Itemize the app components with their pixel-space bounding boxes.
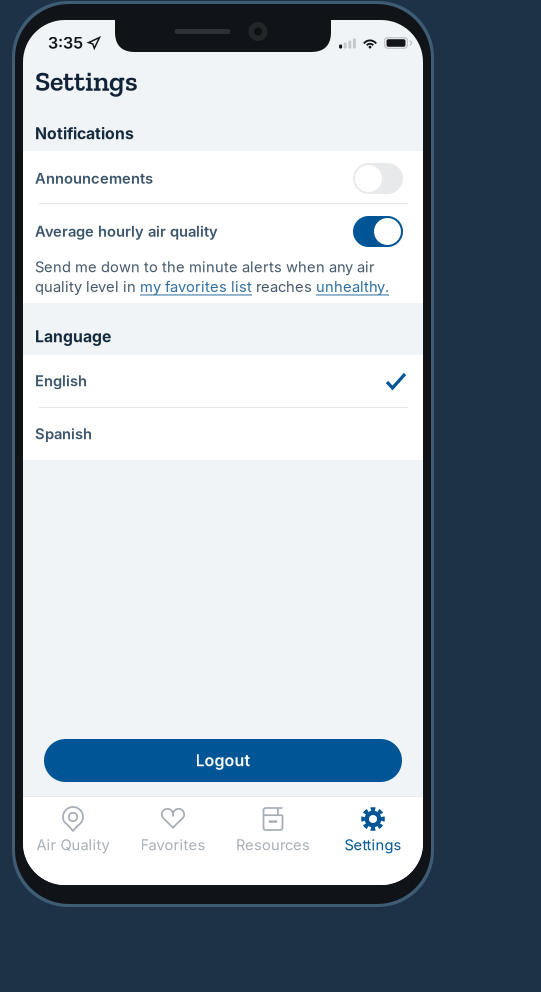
staticText: Settings xyxy=(35,64,138,98)
button[interactable]: Logout xyxy=(44,739,402,782)
button[interactable]: Resources xyxy=(223,797,323,855)
button[interactable]: Favorites xyxy=(123,797,223,855)
staticText: my favorites list xyxy=(140,278,252,295)
staticText: Average hourly air quality xyxy=(35,223,218,240)
staticText: Spanish xyxy=(35,425,92,443)
staticText: Language xyxy=(35,327,111,346)
staticText: unhealthy. xyxy=(316,278,389,295)
staticText: Send me down to the minute alerts when a… xyxy=(35,258,375,276)
staticText: Settings xyxy=(344,836,401,854)
staticText: Favorites xyxy=(140,836,205,854)
staticText: Logout xyxy=(195,751,250,770)
staticText: reaches xyxy=(252,278,316,295)
staticText: quality level in xyxy=(35,278,140,295)
button[interactable]: Air Quality xyxy=(23,797,123,855)
button[interactable]: Spanish xyxy=(23,408,423,460)
button[interactable]: Average hourly air quality xyxy=(23,204,423,249)
button[interactable]: Announcements xyxy=(23,151,423,203)
staticText: Resources xyxy=(236,836,310,854)
staticText: English xyxy=(35,372,87,390)
staticText: 3:35 xyxy=(48,33,83,53)
staticText: Air Quality xyxy=(36,836,109,854)
staticText: Announcements xyxy=(35,170,153,187)
button[interactable]: Settings xyxy=(323,797,423,855)
staticText: Notifications xyxy=(35,124,134,143)
button[interactable]: English xyxy=(23,355,423,407)
